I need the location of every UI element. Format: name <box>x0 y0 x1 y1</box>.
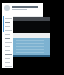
button[interactable] <box>2 64 13 68</box>
button[interactable] <box>2 36 13 40</box>
button[interactable] <box>2 32 13 36</box>
button[interactable] <box>2 20 13 24</box>
button[interactable] <box>2 24 13 28</box>
button[interactable] <box>2 60 13 64</box>
button[interactable] <box>2 44 13 48</box>
button[interactable] <box>2 3 43 17</box>
button[interactable] <box>2 40 13 44</box>
button[interactable] <box>2 56 13 60</box>
button[interactable] <box>2 52 13 56</box>
button[interactable] <box>2 28 13 32</box>
button[interactable] <box>2 48 13 52</box>
button[interactable] <box>2 16 13 20</box>
